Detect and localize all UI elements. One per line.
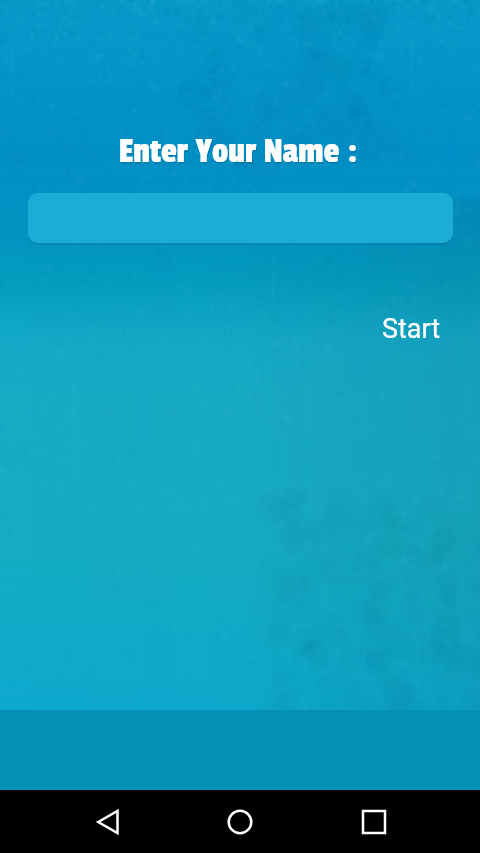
button[interactable]: Home [216,798,264,846]
button[interactable]: Recent apps [350,798,398,846]
staticText: Enter Your Name : [0,132,478,171]
button[interactable]: Back [83,798,131,846]
button[interactable]: Start [368,306,452,354]
staticText: Enter Your Name : [0,134,479,173]
staticText: Start [382,313,441,345]
